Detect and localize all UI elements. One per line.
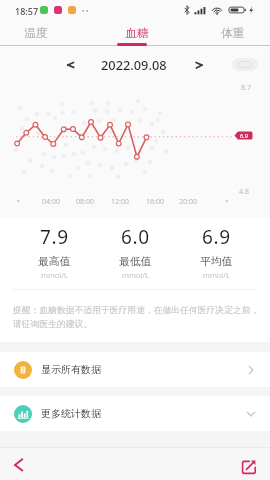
staticText: 平均值: [200, 255, 233, 269]
staticText: 6.9: [202, 224, 231, 250]
button[interactable]: 体重: [205, 22, 261, 44]
staticText: mmol/L: [203, 270, 230, 280]
staticText: mmol/L: [41, 270, 68, 280]
staticText: 04:00: [42, 197, 60, 207]
button[interactable]: Back: [6, 453, 30, 477]
staticText: 提醒：血糖数据不适用于医疗用途，在做出任何医疗决定之前， 请征询医生的建议。: [13, 305, 260, 329]
staticText: 12:00: [111, 197, 129, 207]
staticText: 20:00: [179, 197, 197, 207]
button[interactable]: 更多统计数据: [0, 396, 270, 431]
staticText: mmol/L: [122, 270, 149, 280]
staticText: 16:00: [146, 197, 164, 207]
staticText: 8.7: [241, 83, 251, 93]
staticText: 2022.09.08: [101, 56, 167, 73]
staticText: 4.8: [239, 187, 249, 197]
staticText: 7.9: [40, 224, 69, 250]
button[interactable]: Unit settings: [232, 58, 258, 71]
staticText: 显示所有数据: [41, 363, 101, 376]
staticText: 更多统计数据: [41, 407, 101, 420]
button[interactable]: 血糖: [109, 22, 165, 44]
button[interactable]: Share: [235, 454, 259, 478]
staticText: 08:00: [76, 197, 94, 207]
staticText: 6.0: [121, 224, 150, 250]
staticText: 6.9: [240, 132, 248, 140]
staticText: 血糖: [125, 26, 149, 41]
staticText: 最高值: [38, 255, 71, 269]
staticText: 最低值: [119, 255, 152, 269]
staticText: 18:57: [15, 5, 39, 17]
staticText: 体重: [221, 26, 245, 41]
button[interactable]: Previous day: [58, 52, 82, 76]
button[interactable]: 温度: [8, 22, 64, 44]
button[interactable]: Next day: [188, 52, 212, 76]
staticText: 温度: [24, 26, 48, 41]
button[interactable]: 显示所有数据: [0, 352, 270, 387]
